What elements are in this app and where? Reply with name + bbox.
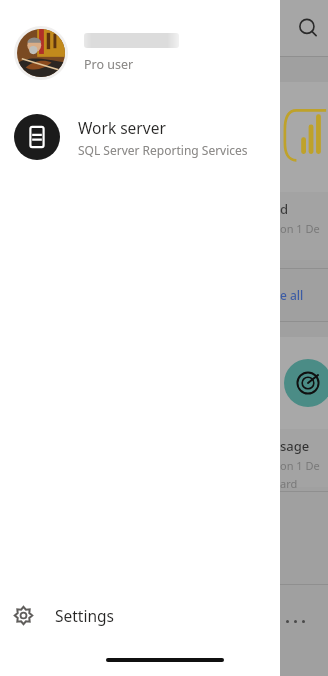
staticText: on 1 De [280, 458, 320, 473]
staticText: d Marke [280, 200, 328, 218]
staticText: Work server [78, 117, 166, 138]
staticText: e all [280, 287, 304, 303]
button[interactable]: Search [296, 16, 322, 42]
staticText: on 1 De [280, 221, 320, 236]
button[interactable]: Settings [0, 593, 280, 638]
staticText: SQL Server Reporting Services [78, 142, 248, 158]
staticText: Settings [55, 605, 114, 626]
button[interactable]: e all [280, 269, 328, 321]
button[interactable]: Pro user [0, 22, 280, 84]
staticText: Pro user [84, 56, 134, 73]
button[interactable]: Work server [0, 108, 280, 166]
button[interactable]: d Marke [280, 82, 328, 260]
button[interactable]: More options [284, 618, 312, 625]
staticText: sage [280, 437, 310, 455]
button[interactable]: sage [280, 337, 328, 487]
staticText: ard [280, 476, 298, 491]
